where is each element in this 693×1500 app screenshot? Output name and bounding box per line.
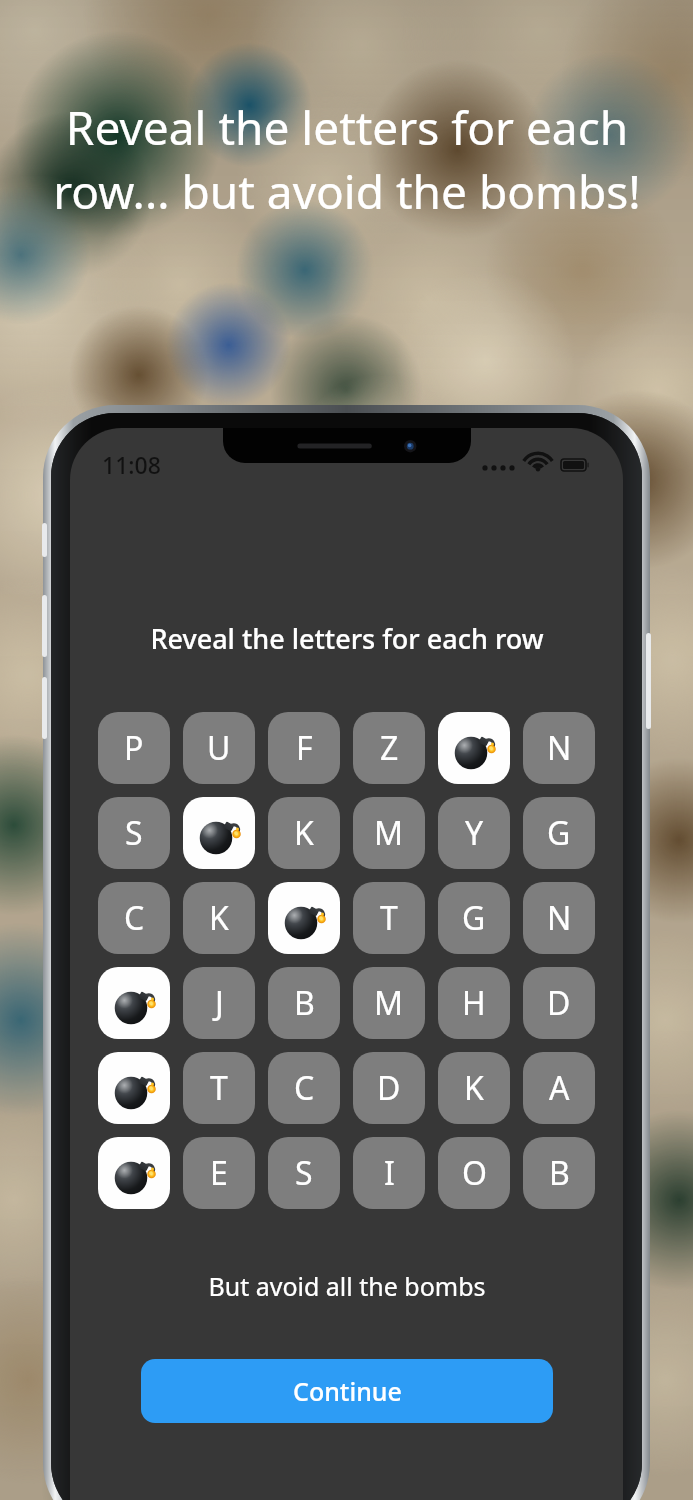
staticText: Continue xyxy=(293,1374,402,1408)
staticText: C xyxy=(124,896,145,940)
button[interactable]: C xyxy=(268,1052,340,1124)
button[interactable]: H xyxy=(438,967,510,1039)
button[interactable]: Bomb tile xyxy=(98,1052,170,1124)
staticText: U xyxy=(207,726,231,770)
staticText: B xyxy=(294,981,315,1025)
staticText: B xyxy=(549,1151,570,1195)
staticText: C xyxy=(294,1066,315,1110)
staticText: Z xyxy=(380,726,399,770)
staticText: K xyxy=(294,811,314,855)
button[interactable]: O xyxy=(438,1137,510,1209)
button[interactable]: B xyxy=(268,967,340,1039)
staticText: F xyxy=(296,726,313,770)
button[interactable]: F xyxy=(268,712,340,784)
button[interactable]: N xyxy=(523,882,595,954)
staticText: T xyxy=(380,896,398,940)
button[interactable]: N xyxy=(523,712,595,784)
staticText: I xyxy=(384,1151,395,1195)
staticText: But avoid all the bombs xyxy=(208,1269,486,1303)
staticText: J xyxy=(215,981,224,1025)
button[interactable]: S xyxy=(98,797,170,869)
button[interactable]: T xyxy=(353,882,425,954)
staticText: N xyxy=(547,726,572,770)
button[interactable]: E xyxy=(183,1137,255,1209)
staticText: M xyxy=(374,981,404,1025)
button[interactable]: Bomb tile xyxy=(438,712,510,784)
staticText: E xyxy=(210,1151,228,1195)
staticText: P xyxy=(124,726,144,770)
button[interactable]: D xyxy=(523,967,595,1039)
button[interactable]: Bomb tile xyxy=(183,797,255,869)
staticText: A xyxy=(549,1066,570,1110)
button[interactable]: J xyxy=(183,967,255,1039)
staticText: D xyxy=(547,981,571,1025)
button[interactable]: Continue xyxy=(141,1359,553,1423)
button[interactable]: C xyxy=(98,882,170,954)
staticText: Reveal the letters for each row... but a… xyxy=(53,96,641,223)
button[interactable]: Bomb tile xyxy=(268,882,340,954)
staticText: K xyxy=(209,896,229,940)
button[interactable]: B xyxy=(523,1137,595,1209)
button[interactable]: D xyxy=(353,1052,425,1124)
staticText: O xyxy=(462,1151,487,1195)
button[interactable]: K xyxy=(183,882,255,954)
button[interactable]: T xyxy=(183,1052,255,1124)
staticText: G xyxy=(462,896,486,940)
button[interactable]: Bomb tile xyxy=(98,967,170,1039)
button[interactable]: P xyxy=(98,712,170,784)
staticText: S xyxy=(125,811,143,855)
button[interactable]: G xyxy=(438,882,510,954)
button[interactable]: M xyxy=(353,797,425,869)
staticText: H xyxy=(462,981,486,1025)
button[interactable]: Z xyxy=(353,712,425,784)
button[interactable]: K xyxy=(268,797,340,869)
button[interactable]: K xyxy=(438,1052,510,1124)
staticText: 11:08 xyxy=(102,449,161,480)
staticText: N xyxy=(547,896,572,940)
button[interactable]: Bomb tile xyxy=(98,1137,170,1209)
staticText: K xyxy=(464,1066,484,1110)
button[interactable]: S xyxy=(268,1137,340,1209)
button[interactable]: A xyxy=(523,1052,595,1124)
button[interactable]: M xyxy=(353,967,425,1039)
staticText: Y xyxy=(465,811,484,855)
button[interactable]: Y xyxy=(438,797,510,869)
staticText: T xyxy=(210,1066,228,1110)
staticText: Reveal the letters for each row xyxy=(150,620,544,657)
staticText: D xyxy=(377,1066,401,1110)
staticText: M xyxy=(374,811,404,855)
staticText: S xyxy=(295,1151,313,1195)
staticText: G xyxy=(547,811,571,855)
button[interactable]: G xyxy=(523,797,595,869)
button[interactable]: I xyxy=(353,1137,425,1209)
button[interactable]: U xyxy=(183,712,255,784)
